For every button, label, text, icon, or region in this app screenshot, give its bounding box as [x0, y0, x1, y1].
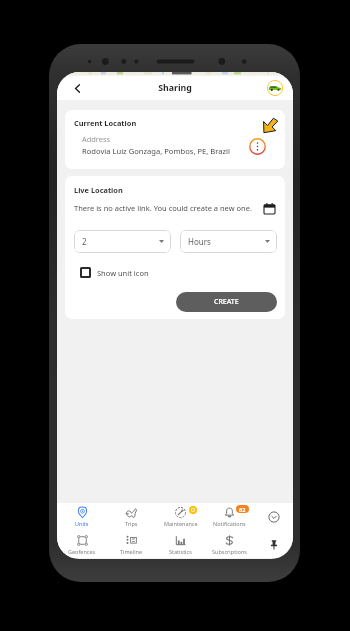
- staticText: Hours: [188, 236, 265, 247]
- button[interactable]: 2: [74, 230, 171, 253]
- staticText: There is no active link. You could creat…: [74, 203, 257, 213]
- staticText: Geofences: [68, 548, 96, 555]
- button[interactable]: Back: [67, 78, 87, 98]
- button[interactable]: Show unit icon: [80, 267, 153, 278]
- staticText: Notifications: [213, 520, 246, 527]
- button[interactable]: Pin panel: [254, 531, 293, 558]
- staticText: Maintenance: [164, 520, 198, 527]
- staticText: Address: [82, 134, 110, 144]
- button[interactable]: Hours: [180, 230, 277, 253]
- button[interactable]: Trips: [107, 503, 156, 531]
- button[interactable]: Pick date: [261, 200, 277, 216]
- button[interactable]: Geofences: [57, 531, 107, 558]
- button[interactable]: Expand menu: [254, 503, 293, 531]
- staticText: 2: [82, 236, 159, 247]
- staticText: Live Location: [74, 185, 123, 195]
- button[interactable]: Maintenance: [156, 503, 205, 531]
- staticText: Statistics: [169, 548, 192, 555]
- staticText: CREATE: [214, 297, 239, 307]
- staticText: Sharing: [158, 82, 192, 94]
- button[interactable]: Statistics: [156, 531, 205, 558]
- staticText: Units: [75, 520, 89, 527]
- staticText: Trips: [125, 520, 138, 527]
- staticText: Subscriptions: [212, 548, 247, 555]
- button[interactable]: Units: [57, 503, 107, 531]
- button[interactable]: Vehicle profile: [265, 78, 285, 98]
- staticText: Show unit icon: [97, 268, 149, 278]
- button[interactable]: Timeline: [107, 531, 156, 558]
- button[interactable]: More options: [249, 138, 266, 155]
- button[interactable]: CREATE: [176, 292, 277, 312]
- staticText: 62: [239, 506, 246, 513]
- staticText: Timeline: [120, 548, 143, 555]
- staticText: Rodovia Luiz Gonzaga, Pombos, PE, Brazil: [82, 146, 230, 156]
- button[interactable]: Subscriptions: [205, 531, 254, 558]
- button[interactable]: 62: [205, 503, 254, 531]
- staticText: Current Location: [74, 118, 137, 128]
